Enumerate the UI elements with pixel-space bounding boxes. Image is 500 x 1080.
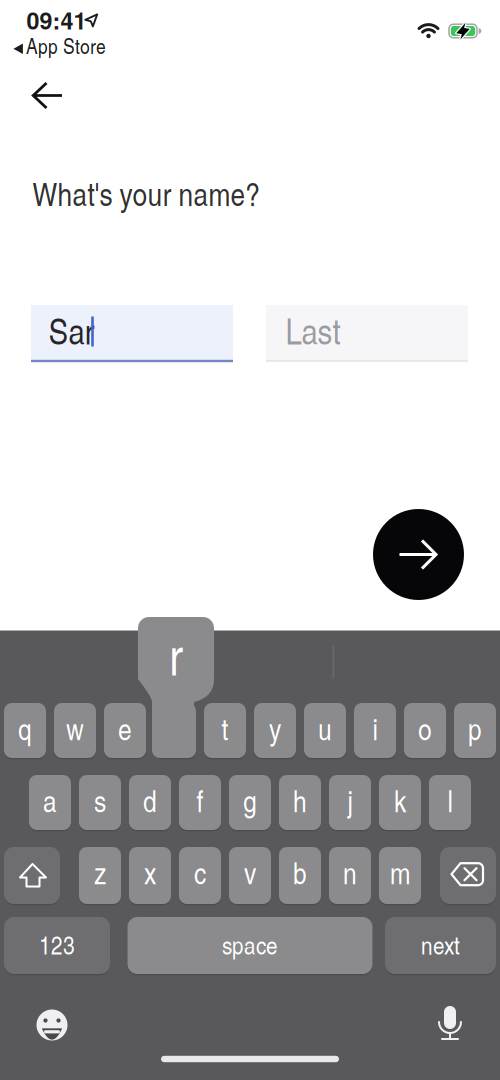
staticText: y (269, 708, 281, 749)
staticText: d (143, 780, 157, 821)
button[interactable]: p (454, 703, 496, 758)
staticText: Last (285, 305, 340, 355)
button[interactable]: 123 (4, 917, 110, 974)
button[interactable]: e (104, 703, 146, 758)
button[interactable]: r (154, 703, 196, 758)
button[interactable]: next (385, 917, 496, 974)
button[interactable] (440, 847, 496, 904)
button[interactable]: y (254, 703, 296, 758)
button[interactable]: g (229, 775, 271, 830)
button[interactable]: Sar (31, 305, 233, 360)
button[interactable]: k (379, 775, 421, 830)
staticText: k (394, 780, 406, 821)
button[interactable]: Last (266, 305, 468, 360)
button[interactable]: u (304, 703, 346, 758)
button[interactable]: App Store (13, 38, 103, 60)
staticText: s (94, 780, 106, 821)
button[interactable] (373, 509, 464, 600)
staticText: v (244, 852, 256, 893)
staticText: j (347, 780, 352, 821)
button[interactable]: c (179, 847, 221, 904)
staticText: t (221, 708, 228, 749)
button[interactable]: v (229, 847, 271, 904)
staticText: 123 (39, 927, 75, 961)
button[interactable] (34, 1007, 70, 1043)
staticText: a (43, 780, 57, 821)
button[interactable]: b (279, 847, 321, 904)
button[interactable]: m (379, 847, 421, 904)
button[interactable]: q (4, 703, 46, 758)
staticText: p (468, 708, 482, 749)
button[interactable] (431, 1004, 469, 1044)
button[interactable]: x (129, 847, 171, 904)
button[interactable]: w (54, 703, 96, 758)
staticText: Sar (49, 305, 95, 355)
staticText: b (293, 852, 307, 893)
button[interactable]: d (129, 775, 171, 830)
staticText: g (243, 780, 257, 821)
button[interactable]: j (329, 775, 371, 830)
staticText: space (222, 927, 278, 961)
staticText: next (421, 927, 460, 961)
staticText: n (343, 852, 357, 893)
staticText: i (372, 708, 377, 749)
staticText: h (293, 780, 307, 821)
staticText: 09:41 (26, 3, 86, 37)
button[interactable]: n (329, 847, 371, 904)
staticText: App Store (26, 31, 106, 60)
button[interactable]: f (179, 775, 221, 830)
staticText: o (418, 708, 432, 749)
button[interactable]: s (79, 775, 121, 830)
button[interactable]: t (204, 703, 246, 758)
button[interactable]: a (29, 775, 71, 830)
staticText: What's your name? (32, 171, 260, 215)
button[interactable]: l (429, 775, 471, 830)
staticText: q (18, 708, 32, 749)
staticText: m (390, 852, 410, 893)
staticText: w (66, 708, 84, 749)
button[interactable] (4, 847, 60, 904)
button[interactable]: z (79, 847, 121, 904)
staticText: e (118, 708, 132, 749)
button[interactable]: h (279, 775, 321, 830)
staticText: c (194, 852, 206, 893)
staticText: u (318, 708, 332, 749)
staticText: f (196, 780, 203, 821)
button[interactable] (15, 70, 75, 120)
button[interactable]: space (127, 917, 372, 974)
button[interactable]: i (354, 703, 396, 758)
button[interactable]: o (404, 703, 446, 758)
staticText: r (169, 620, 183, 690)
staticText: x (144, 852, 156, 893)
staticText: z (94, 852, 106, 893)
staticText: l (447, 780, 452, 821)
